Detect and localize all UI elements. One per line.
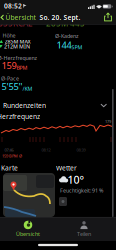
staticText: BPM xyxy=(16,64,27,71)
staticText: Ø-Kadenz xyxy=(55,32,79,40)
staticText: Ø-Pace xyxy=(1,75,19,82)
staticText: Ø-Herzfrequenz xyxy=(0,54,37,62)
staticText: So. 20. Sept. xyxy=(39,13,80,22)
staticText: 08:52 xyxy=(4,2,22,10)
staticText: Übersicht xyxy=(5,13,35,22)
staticText: /KM xyxy=(22,85,32,92)
staticText: Rundenzeiten xyxy=(3,101,46,110)
staticText: 07:46 xyxy=(4,147,13,153)
staticText: 144 xyxy=(56,39,71,51)
staticText: SPM xyxy=(71,44,82,51)
staticText: Karte xyxy=(1,164,18,172)
staticText: Wetter xyxy=(56,164,77,172)
staticText: 635KCAL xyxy=(0,18,32,29)
staticText: 159 xyxy=(1,59,16,72)
staticText: Übersicht xyxy=(16,230,40,238)
staticText: Teilen xyxy=(77,230,91,238)
staticText: 5'55" xyxy=(1,80,22,93)
staticText: 08:39 xyxy=(76,147,85,153)
staticText: 179 xyxy=(105,119,111,124)
staticText: 285M 44S xyxy=(46,18,84,29)
button[interactable]: Teilen xyxy=(104,12,112,21)
staticText: 08:12 xyxy=(41,147,50,153)
button[interactable]: Teilen xyxy=(64,219,104,239)
staticText: Feuchtigkeit: 91 % xyxy=(60,187,103,194)
staticText: 159 BPM Ø xyxy=(2,153,22,159)
button[interactable]: Übersicht xyxy=(0,13,35,22)
staticText: Herzfrequenz xyxy=(0,112,40,121)
button[interactable]: Übersicht xyxy=(8,219,48,239)
button[interactable]: Rundenzeiten xyxy=(3,101,107,110)
staticText: 10° xyxy=(67,172,84,187)
button[interactable]: Karte xyxy=(0,0,116,250)
staticText: Höhe xyxy=(2,32,15,39)
staticText: 285M MAX xyxy=(4,38,30,45)
staticText: 212M MIN xyxy=(4,43,30,50)
